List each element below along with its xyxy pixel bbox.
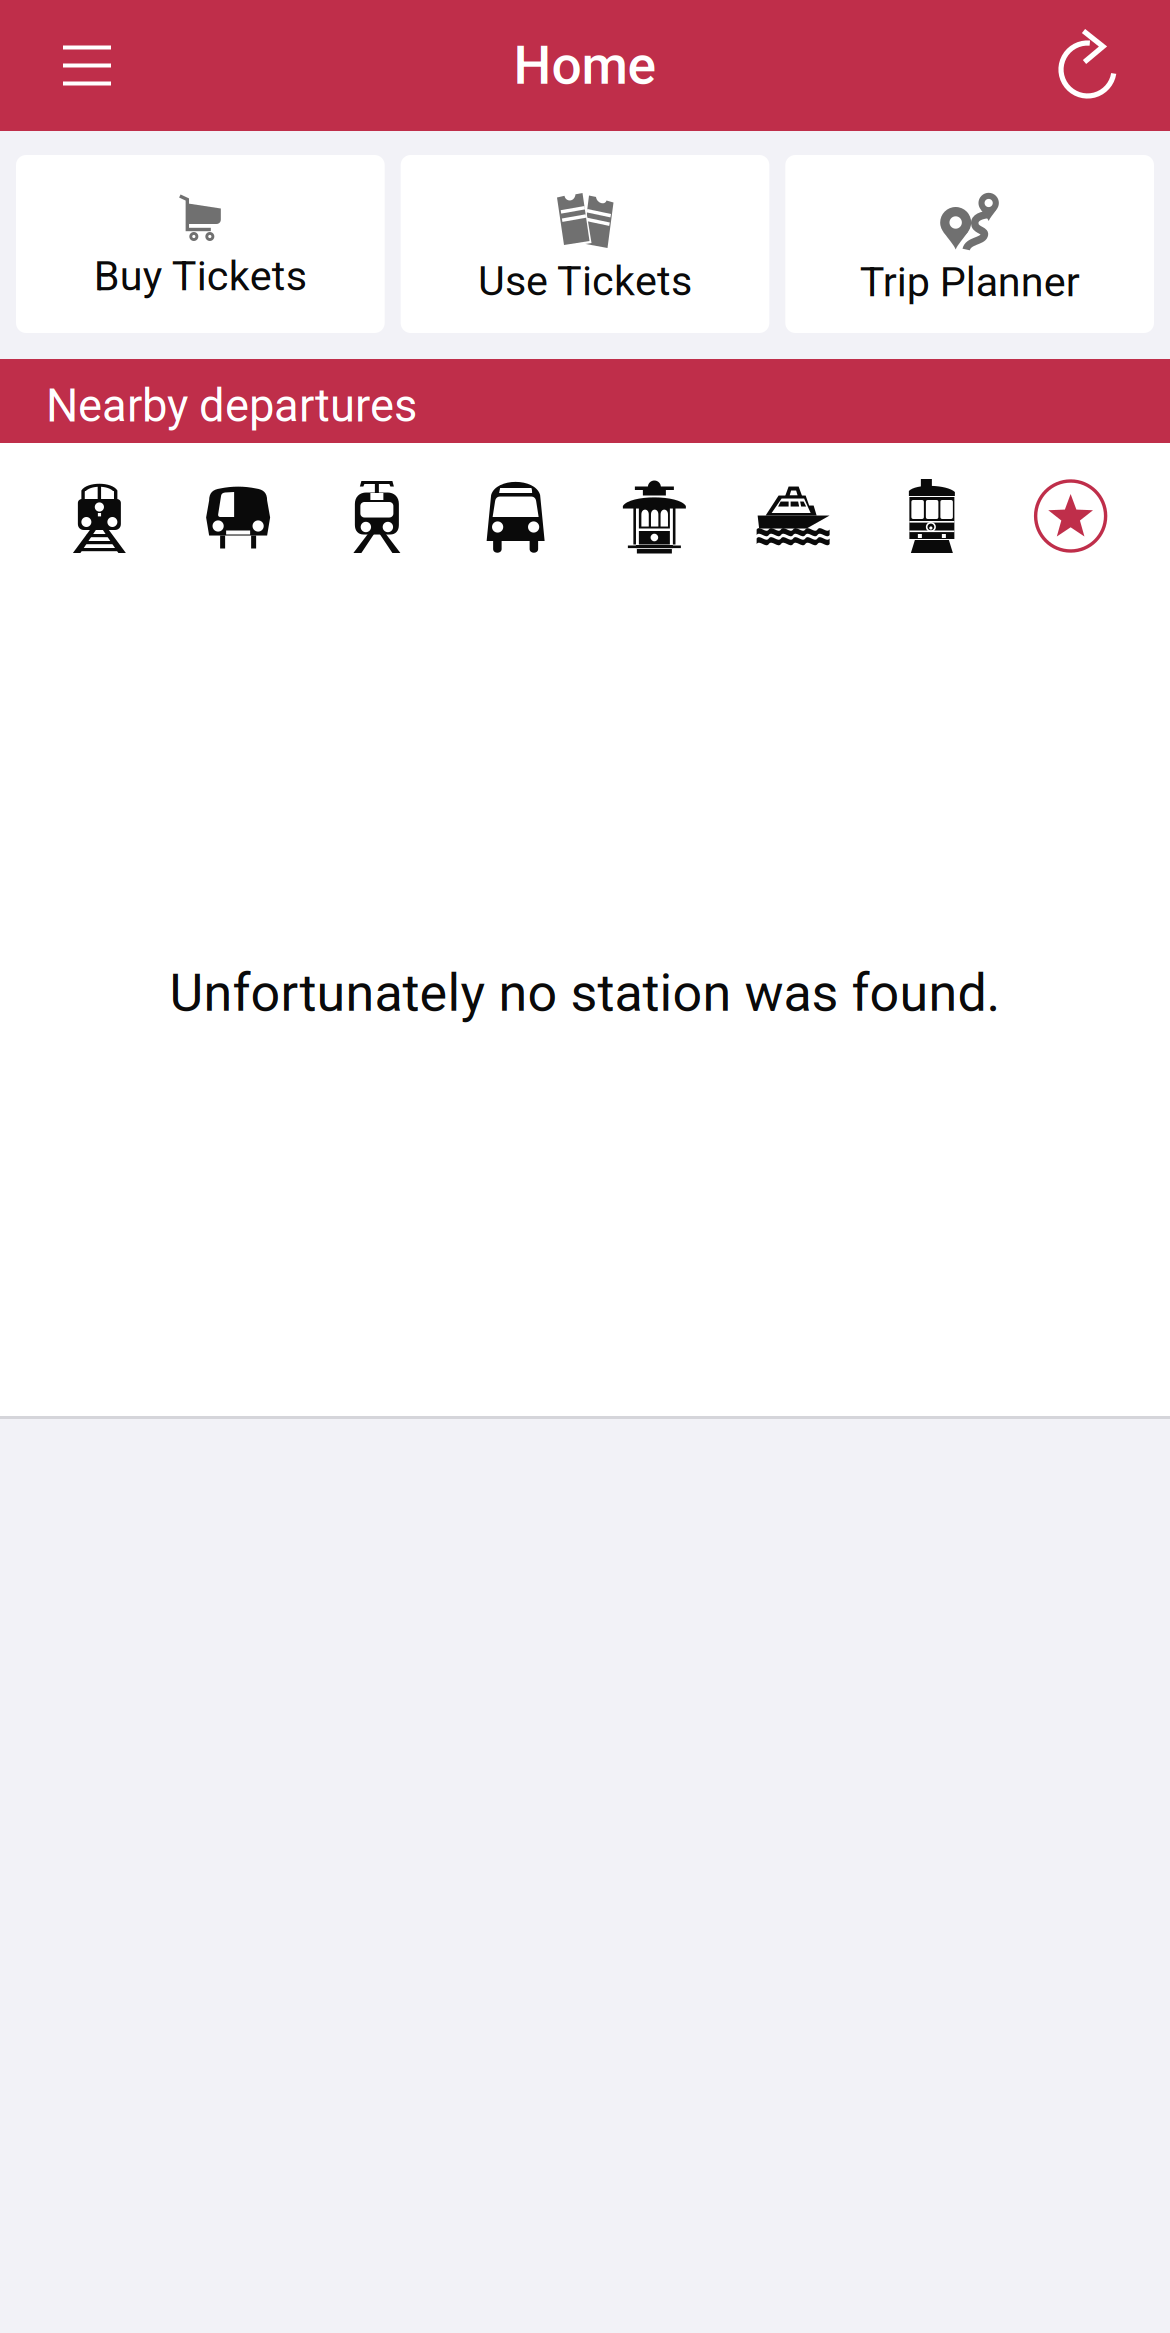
button[interactable]: Menu [0, 0, 174, 131]
staticText: Buy Tickets [94, 252, 307, 300]
staticText: Home [513, 34, 656, 97]
button[interactable]: Subway [169, 466, 308, 566]
button[interactable]: Tram [307, 466, 446, 566]
button[interactable]: Trip Planner [785, 155, 1154, 333]
button[interactable]: Refresh [1004, 0, 1170, 131]
button[interactable]: Bus [446, 466, 585, 566]
staticText: Unfortunately no station was found. [169, 962, 1000, 1023]
button[interactable]: Cable car [585, 466, 724, 566]
button[interactable]: Streetcar [862, 466, 1001, 566]
staticText: Nearby departures [46, 379, 417, 432]
button[interactable]: Use Tickets [401, 155, 769, 333]
button[interactable]: Buy Tickets [16, 155, 385, 333]
staticText: Trip Planner [860, 258, 1080, 306]
button[interactable]: Ferry [724, 466, 863, 566]
staticText: Use Tickets [478, 257, 692, 305]
button[interactable]: Favourites [1001, 466, 1140, 566]
button[interactable]: Train [30, 466, 169, 566]
